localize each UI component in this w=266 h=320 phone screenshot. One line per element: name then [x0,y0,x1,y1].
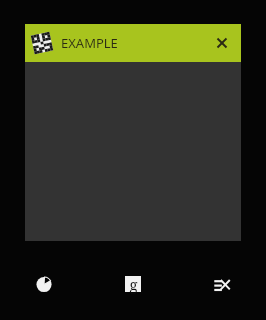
button[interactable]: Glossary [88,256,177,312]
staticText: EXAMPLE [61,34,203,52]
button[interactable]: Clear list [177,256,266,312]
staticText: g [129,274,138,294]
button[interactable]: Statistics [0,256,88,312]
button[interactable]: Close [203,24,241,62]
